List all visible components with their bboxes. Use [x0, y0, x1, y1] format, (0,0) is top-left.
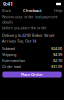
staticText: Place Order — [21, 72, 43, 77]
staticText: Subtotal — [2, 46, 15, 51]
button[interactable]: Place Order — [2, 72, 62, 78]
staticText: Checkout — [23, 8, 42, 13]
staticText: before you place the order. — [2, 25, 47, 30]
staticText: Arrives Tue, Oct 14 — [2, 38, 36, 43]
staticText: $4.99 — [53, 52, 62, 57]
staticText: Back — [2, 8, 11, 13]
staticText: Delivery to 221B Baker Street — [2, 32, 54, 38]
staticText: $2.10 — [53, 58, 62, 63]
staticText: $24.00 — [51, 46, 62, 51]
staticText: Order total — [2, 64, 21, 69]
staticText: $31.09 — [51, 64, 62, 69]
staticText: Estimated tax — [2, 58, 25, 63]
staticText: 9:41 — [3, 0, 13, 8]
staticText: Review your order and payment details — [2, 14, 57, 25]
staticText: Help — [54, 8, 62, 13]
staticText: Shipping — [2, 52, 16, 57]
